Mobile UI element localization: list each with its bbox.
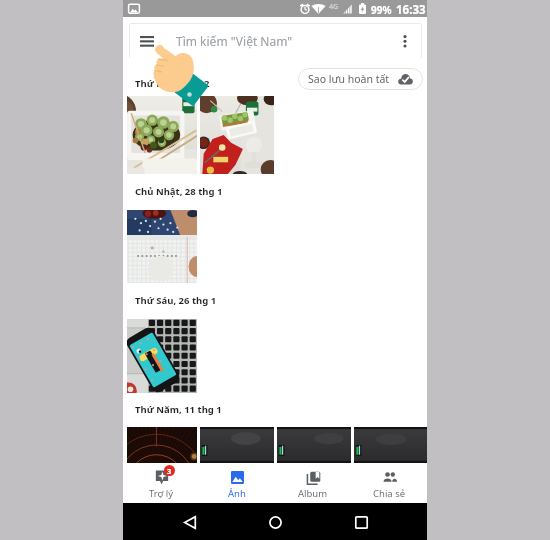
- staticText: Thứ Năm, 11 thg 1: [135, 403, 222, 416]
- staticText: Chủ Nhật, 28 thg 1: [135, 185, 223, 198]
- staticText: 3: [167, 466, 172, 476]
- button[interactable]: Back: [172, 506, 208, 538]
- button[interactable]: Sao lưu hoàn tất: [298, 68, 423, 90]
- staticText: Album: [298, 487, 328, 500]
- staticText: Ảnh: [228, 487, 246, 500]
- staticText: Thứ Hai, 5 thg 2: [135, 77, 210, 90]
- button[interactable]: Chia sẻ: [351, 463, 427, 503]
- button[interactable]: Open navigation menu: [131, 24, 163, 58]
- staticText: 16:33: [396, 2, 426, 18]
- staticText: Sao lưu hoàn tất: [308, 72, 390, 86]
- button[interactable]: Recent apps: [343, 506, 379, 538]
- button[interactable]: More options: [391, 24, 419, 58]
- button[interactable]: Ảnh: [199, 463, 275, 503]
- button[interactable]: Album: [275, 463, 351, 503]
- staticText: Tìm kiếm "Việt Nam": [176, 33, 293, 49]
- button[interactable]: Home: [257, 506, 293, 538]
- staticText: Thứ Sáu, 26 thg 1: [135, 294, 217, 307]
- staticText: Trợ lý: [149, 487, 174, 500]
- staticText: 4G: [329, 2, 339, 12]
- button[interactable]: 3: [123, 463, 199, 503]
- staticText: Chia sẻ: [373, 487, 406, 500]
- staticText: 99%: [371, 3, 392, 17]
